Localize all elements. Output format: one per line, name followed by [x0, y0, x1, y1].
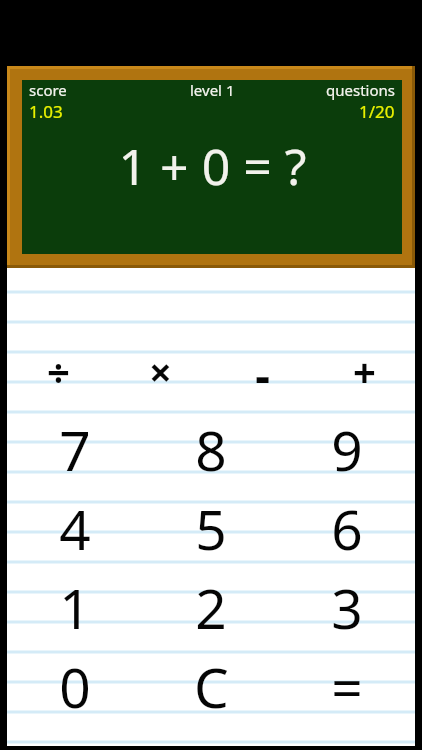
staticText: 7	[59, 412, 91, 482]
staticText: C	[194, 649, 229, 719]
button[interactable]: 5	[143, 491, 279, 561]
staticText: 1/20	[359, 100, 395, 123]
staticText: 1.03	[29, 100, 63, 123]
staticText: =	[331, 649, 363, 719]
staticText: 1	[59, 570, 91, 640]
button[interactable]: C	[143, 649, 279, 719]
button[interactable]: Divide	[7, 344, 109, 392]
staticText: 9	[331, 412, 363, 482]
staticText: questions	[326, 80, 395, 100]
staticText: 8	[195, 412, 227, 482]
staticText: level 1	[190, 80, 235, 100]
button[interactable]: Subtract	[211, 344, 313, 392]
button[interactable]: 3	[279, 570, 415, 640]
staticText: 6	[331, 491, 363, 561]
button[interactable]: 6	[279, 491, 415, 561]
button[interactable]: 8	[143, 412, 279, 482]
staticText: 0	[59, 649, 91, 719]
staticText: ×	[149, 344, 172, 392]
staticText: 4	[59, 491, 91, 561]
staticText: 1 + 0 = ?	[118, 132, 307, 200]
button[interactable]: 4	[7, 491, 143, 561]
staticText: ÷	[47, 344, 70, 392]
staticText: 2	[195, 570, 227, 640]
button[interactable]: 0	[7, 649, 143, 719]
button[interactable]: =	[279, 649, 415, 719]
button[interactable]: 2	[143, 570, 279, 640]
button[interactable]: 9	[279, 412, 415, 482]
staticText: +	[353, 344, 376, 392]
staticText: 5	[195, 491, 227, 561]
staticText: -	[255, 344, 270, 392]
button[interactable]: 7	[7, 412, 143, 482]
staticText: score	[29, 80, 67, 100]
button[interactable]: Multiply	[109, 344, 211, 392]
button[interactable]: 1	[7, 570, 143, 640]
button[interactable]: Add	[313, 344, 415, 392]
staticText: 3	[331, 570, 363, 640]
